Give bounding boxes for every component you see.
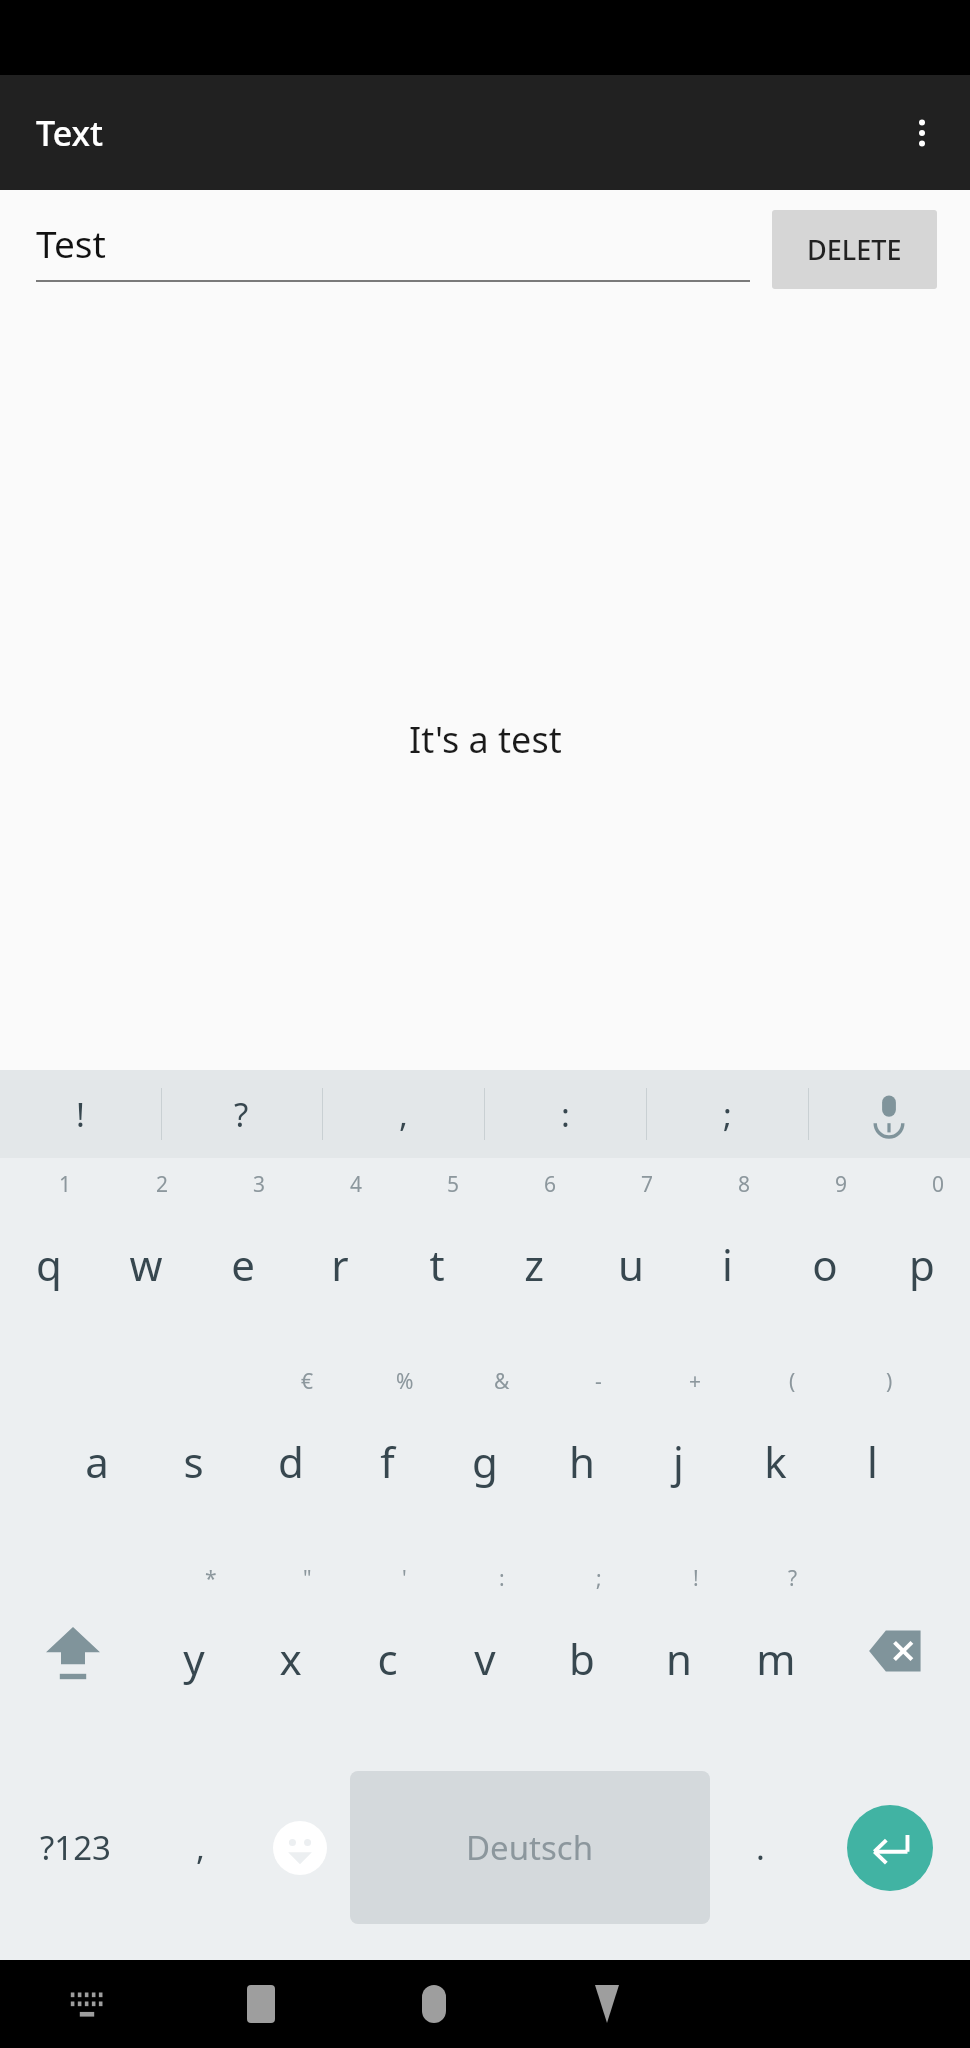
staticText: b [569, 1630, 595, 1687]
staticText: 8 [738, 1170, 751, 1199]
staticText: * [205, 1564, 217, 1593]
staticText: e [231, 1236, 255, 1293]
staticText: DELETE [807, 231, 902, 268]
staticText: h [569, 1433, 595, 1490]
staticText: z [524, 1236, 544, 1293]
staticText: 0 [932, 1170, 945, 1199]
button[interactable]: 5 [388, 1158, 485, 1355]
button[interactable]: Deutsch [350, 1771, 710, 1924]
button[interactable]: . [710, 1749, 810, 1946]
staticText: . [756, 1825, 765, 1870]
button[interactable]: Enter [810, 1749, 970, 1946]
button[interactable]: ! [630, 1552, 727, 1749]
staticText: 7 [641, 1170, 654, 1199]
button[interactable]: - [533, 1355, 630, 1552]
button[interactable]: ?123 [0, 1749, 150, 1946]
button[interactable]: Voice input [808, 1070, 970, 1158]
button[interactable]: 3 [194, 1158, 291, 1355]
button[interactable]: 2 [97, 1158, 194, 1355]
staticText: & [494, 1367, 510, 1396]
staticText: ; [596, 1564, 602, 1593]
staticText: v [474, 1630, 496, 1687]
staticText: ; [723, 1092, 732, 1137]
button[interactable]: More options [886, 97, 958, 169]
staticText: ?123 [40, 1825, 111, 1870]
staticText: j [673, 1433, 684, 1490]
staticText: ? [788, 1564, 798, 1593]
staticText: m [756, 1630, 796, 1687]
staticText: ' [402, 1564, 407, 1593]
button[interactable]: ) [824, 1355, 921, 1552]
staticText: k [764, 1433, 787, 1490]
button[interactable]: € [242, 1355, 339, 1552]
staticText: d [278, 1433, 304, 1490]
button[interactable]: 0 [873, 1158, 970, 1355]
button[interactable]: Emoji [250, 1749, 350, 1946]
button[interactable]: s [145, 1355, 242, 1552]
button[interactable]: : [436, 1552, 533, 1749]
staticText: 5 [447, 1170, 460, 1199]
staticText: i [722, 1236, 733, 1293]
staticText: Deutsch [466, 1825, 594, 1870]
button[interactable]: Backspace [824, 1552, 970, 1749]
button[interactable]: 1 [0, 1158, 97, 1355]
staticText: o [812, 1236, 838, 1293]
staticText: ! [693, 1564, 699, 1593]
button[interactable]: , [150, 1749, 250, 1946]
staticText: , [399, 1092, 408, 1137]
staticText: % [396, 1367, 414, 1396]
staticText: f [380, 1433, 395, 1490]
staticText: , [196, 1825, 205, 1870]
button[interactable]: ? [727, 1552, 824, 1749]
staticText: t [429, 1236, 445, 1293]
staticText: s [183, 1433, 204, 1490]
staticText: : [499, 1564, 505, 1593]
button[interactable]: ; [533, 1552, 630, 1749]
staticText: 4 [350, 1170, 363, 1199]
staticText: Text [36, 110, 104, 156]
button[interactable]: ( [727, 1355, 824, 1552]
staticText: 3 [253, 1170, 266, 1199]
staticText: ( [789, 1367, 796, 1396]
button[interactable]: 8 [679, 1158, 776, 1355]
staticText: + [689, 1367, 702, 1396]
button[interactable]: Hide keyboard [0, 1960, 174, 2048]
button[interactable]: 9 [776, 1158, 873, 1355]
staticText: : [561, 1092, 570, 1137]
staticText: p [909, 1236, 935, 1293]
button[interactable]: + [630, 1355, 727, 1552]
staticText: y [183, 1630, 205, 1687]
staticText: - [595, 1367, 602, 1396]
staticText: x [279, 1630, 302, 1687]
button[interactable]: a [48, 1355, 145, 1552]
button[interactable]: ! [0, 1070, 161, 1158]
button[interactable]: Shift [0, 1552, 145, 1749]
button[interactable]: : [484, 1070, 646, 1158]
staticText: ) [886, 1367, 893, 1396]
button[interactable]: Test [36, 218, 750, 282]
staticText: " [303, 1564, 312, 1593]
staticText: w [129, 1236, 163, 1293]
button[interactable]: DELETE [772, 210, 937, 289]
button[interactable]: 7 [582, 1158, 679, 1355]
staticText: ? [234, 1092, 249, 1137]
staticText: n [666, 1630, 692, 1687]
button[interactable]: Recents [174, 1960, 347, 2048]
staticText: g [472, 1433, 498, 1490]
staticText: u [618, 1236, 644, 1293]
button[interactable]: * [145, 1552, 242, 1749]
button[interactable]: ? [161, 1070, 322, 1158]
button[interactable]: % [339, 1355, 436, 1552]
button[interactable]: ; [646, 1070, 808, 1158]
staticText: 2 [156, 1170, 169, 1199]
button[interactable]: Home [347, 1960, 520, 2048]
staticText: ! [76, 1092, 85, 1137]
button[interactable]: " [242, 1552, 339, 1749]
staticText: € [301, 1367, 314, 1396]
button[interactable]: Back [520, 1960, 693, 2048]
button[interactable]: 4 [291, 1158, 388, 1355]
button[interactable]: ' [339, 1552, 436, 1749]
button[interactable]: & [436, 1355, 533, 1552]
button[interactable]: , [322, 1070, 484, 1158]
button[interactable]: 6 [485, 1158, 582, 1355]
